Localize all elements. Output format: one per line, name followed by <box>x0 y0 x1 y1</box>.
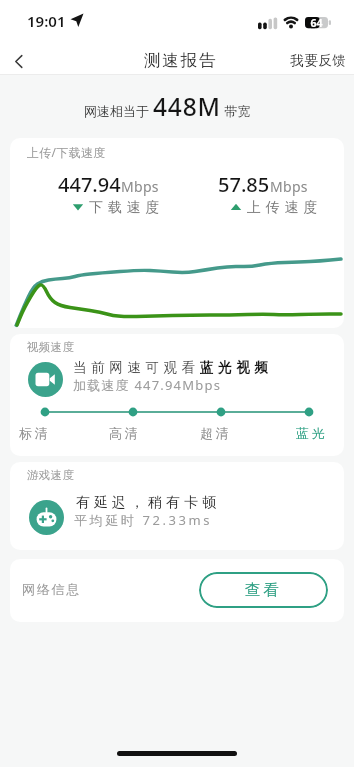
button[interactable] <box>2 45 38 75</box>
staticText: 标清 <box>19 425 51 441</box>
staticText: 网速相当于 <box>84 102 153 120</box>
staticText: 游戏速度 <box>27 468 75 482</box>
staticText: 上传速度 <box>247 199 323 215</box>
button[interactable]: 高清 <box>100 424 150 442</box>
staticText: 超清 <box>200 425 232 441</box>
staticText: 64 <box>305 16 328 30</box>
staticText: 蓝光视频 <box>200 359 273 376</box>
staticText: Mbps <box>270 177 308 196</box>
staticText: 有延迟，稍有卡顿 <box>74 494 218 512</box>
button[interactable]: 查看 <box>199 572 328 608</box>
staticText: 带宽 <box>221 102 251 120</box>
staticText: 19:01 <box>27 11 66 31</box>
staticText: 下载速度 <box>89 199 165 215</box>
button[interactable]: 超清 <box>191 424 241 442</box>
staticText: 57.85 <box>218 171 270 198</box>
button[interactable]: 我要反馈 <box>281 45 354 75</box>
button[interactable]: 标清 <box>10 424 60 442</box>
staticText: Mbps <box>121 177 159 196</box>
staticText: 447.94 <box>58 171 121 198</box>
staticText: 查看 <box>245 580 282 600</box>
staticText: 加载速度 447.94Mbps <box>73 376 222 394</box>
staticText: 测速报告 <box>144 50 218 71</box>
staticText: 蓝光 <box>296 425 328 441</box>
button[interactable]: 蓝光 <box>287 424 337 442</box>
staticText: 448M <box>153 90 221 120</box>
staticText: 上传/下载速度 <box>27 144 106 160</box>
staticText: 当前网速可观看 <box>73 359 200 376</box>
staticText: 网络信息 <box>22 581 82 597</box>
staticText: 平均延时 72.33ms <box>74 511 213 529</box>
staticText: 高清 <box>109 425 141 441</box>
staticText: 视频速度 <box>27 340 75 354</box>
staticText: 我要反馈 <box>290 52 346 69</box>
